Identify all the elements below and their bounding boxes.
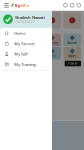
staticText: My Training xyxy=(14,62,35,67)
staticText: Home xyxy=(14,30,25,36)
staticText: Weather xyxy=(6,41,17,45)
button[interactable]: Soil xyxy=(23,47,41,59)
staticText: Shailesh Nawoti xyxy=(15,15,45,20)
button[interactable]: Profile xyxy=(75,0,82,10)
button[interactable]: Scheme xyxy=(63,34,81,46)
button[interactable]: View all xyxy=(65,61,81,66)
button[interactable]: Weather xyxy=(3,34,21,46)
button[interactable]: My Training xyxy=(0,59,52,70)
button[interactable]: Notifications xyxy=(69,0,75,10)
staticText: Market xyxy=(68,54,76,58)
button[interactable]: My Self xyxy=(0,49,52,59)
button[interactable] xyxy=(3,12,21,29)
button[interactable]: Seed xyxy=(43,47,61,59)
button[interactable]: Crop xyxy=(3,47,21,59)
staticText: Crop xyxy=(8,54,15,58)
button[interactable]: Search xyxy=(62,0,69,10)
staticText: 7420854427 xyxy=(15,20,35,24)
staticText: View all xyxy=(68,62,78,65)
staticText: Seed xyxy=(49,54,56,58)
button[interactable]: Market xyxy=(63,47,81,59)
button[interactable]: Menu xyxy=(2,0,11,10)
staticText: Scheme xyxy=(67,41,77,45)
staticText: Mandi xyxy=(28,41,36,45)
staticText: My Farmer xyxy=(14,41,35,46)
button[interactable]: Mandi xyxy=(23,34,41,46)
staticText: Ka xyxy=(24,3,29,8)
button[interactable] xyxy=(63,12,81,29)
button[interactable]: Home xyxy=(0,28,52,38)
button[interactable] xyxy=(23,12,41,29)
staticText: My Self xyxy=(14,51,27,57)
staticText: Agri xyxy=(14,3,23,8)
button[interactable] xyxy=(43,12,61,29)
button[interactable]: Advisory xyxy=(43,34,61,46)
staticText: Advisory xyxy=(47,41,58,45)
button[interactable]: My Farmer xyxy=(0,38,52,49)
